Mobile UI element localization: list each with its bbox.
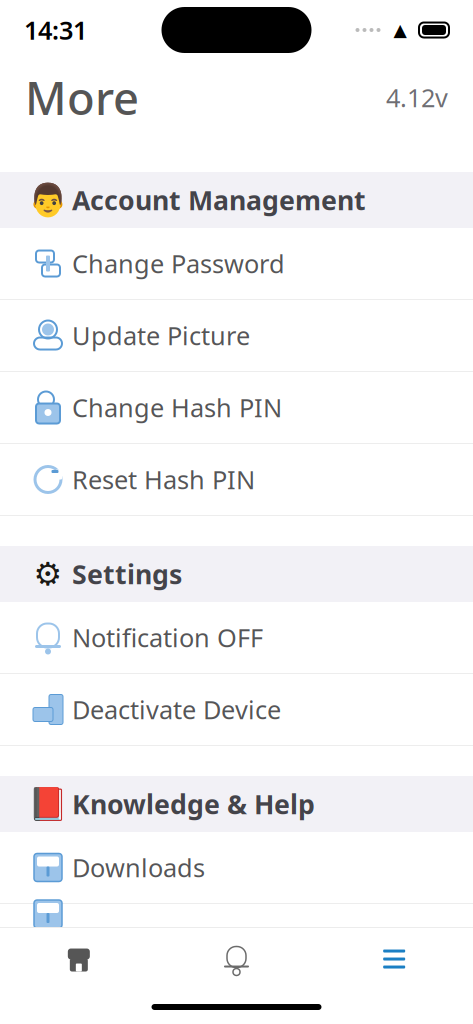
staticText: ▲ xyxy=(393,20,406,40)
staticText: Change Password xyxy=(72,247,285,280)
button[interactable]: Change Password xyxy=(0,228,473,300)
staticText: Update Picture xyxy=(72,319,250,352)
staticText: Account Management xyxy=(72,182,366,218)
button[interactable]: Notifications xyxy=(158,928,315,990)
staticText: Knowledge & Help xyxy=(72,786,315,822)
staticText: 14:31 xyxy=(24,13,87,47)
button[interactable]: Deactivate Device xyxy=(0,674,473,746)
button[interactable]: Reset Hash PIN xyxy=(0,444,473,516)
button[interactable]: More menu xyxy=(315,928,473,990)
staticText: More xyxy=(25,67,139,128)
staticText: Reset Hash PIN xyxy=(72,463,255,496)
staticText: Notification OFF xyxy=(72,621,263,654)
staticText: 4.12v xyxy=(386,81,448,114)
staticText: Deactivate Device xyxy=(72,693,281,726)
button[interactable]: Notification OFF xyxy=(0,602,473,674)
button[interactable]: Downloads xyxy=(0,832,473,904)
staticText: Change Hash PIN xyxy=(72,391,282,424)
staticText: Downloads xyxy=(72,851,205,884)
staticText: 📕 xyxy=(28,786,68,822)
staticText: ⚙ xyxy=(33,556,62,592)
button[interactable]: Home xyxy=(0,928,158,990)
button[interactable]: Change Hash PIN xyxy=(0,372,473,444)
button[interactable]: Update Picture xyxy=(0,300,473,372)
staticText: Settings xyxy=(72,556,182,592)
staticText: 👨 xyxy=(28,182,68,218)
